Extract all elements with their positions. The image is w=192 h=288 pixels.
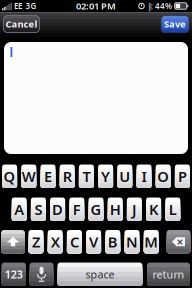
button[interactable]: C <box>67 230 82 253</box>
button[interactable]: M <box>144 230 159 253</box>
button[interactable]: O <box>156 164 171 188</box>
staticText: B <box>108 232 118 251</box>
staticText: I <box>141 166 146 186</box>
staticText: space <box>85 267 114 281</box>
staticText: EE <box>14 1 22 11</box>
button[interactable]: H <box>108 197 123 221</box>
button[interactable]: R <box>60 164 75 188</box>
staticText: R <box>63 166 72 186</box>
staticText: S <box>34 199 42 219</box>
button[interactable]: U <box>117 164 132 188</box>
button[interactable]: W <box>21 164 36 188</box>
button[interactable]: 123 <box>1 262 26 286</box>
button[interactable]: B <box>105 230 120 253</box>
staticText: 44% <box>155 1 172 11</box>
staticText: H <box>110 199 121 219</box>
staticText: A <box>14 199 24 219</box>
staticText: W <box>22 166 36 186</box>
staticText: return <box>152 267 184 281</box>
staticText: F <box>73 199 81 219</box>
staticText: P <box>178 166 187 186</box>
staticText: V <box>89 232 98 251</box>
staticText: × <box>177 234 184 250</box>
button[interactable]: T <box>79 164 94 188</box>
button[interactable]: I <box>136 164 151 188</box>
staticText: D <box>52 199 63 219</box>
staticText: 123 <box>5 267 23 281</box>
staticText: J <box>132 199 137 219</box>
staticText: T <box>82 166 90 186</box>
button[interactable]: space <box>57 262 142 286</box>
button[interactable]: L <box>165 197 180 221</box>
button[interactable]: Y <box>98 164 113 188</box>
button[interactable]: Q <box>2 164 17 188</box>
button[interactable]: N <box>124 230 139 253</box>
staticText: 3G <box>25 1 36 11</box>
button[interactable]: Z <box>28 230 43 253</box>
staticText: Save <box>164 18 186 30</box>
staticText: C <box>70 232 79 251</box>
button[interactable]: F <box>69 197 84 221</box>
staticText: N <box>126 232 138 251</box>
button[interactable]: V <box>86 230 101 253</box>
button[interactable]: Cancel <box>3 15 39 32</box>
staticText: L <box>169 199 177 219</box>
staticText: G <box>90 199 101 219</box>
staticText: 02:01 PM <box>76 0 116 12</box>
staticText: K <box>149 199 158 219</box>
button[interactable]: Dictate <box>29 262 53 286</box>
button[interactable]: G <box>88 197 103 221</box>
staticText: M <box>144 232 158 251</box>
button[interactable]: J <box>127 197 142 221</box>
button[interactable]: X <box>48 230 63 253</box>
button[interactable]: Shift <box>1 230 25 253</box>
button[interactable]: S <box>31 197 46 221</box>
button[interactable]: D <box>50 197 65 221</box>
staticText: Z <box>32 232 40 251</box>
staticText: Q <box>4 166 16 186</box>
button[interactable]: return <box>147 262 190 286</box>
button[interactable]: P <box>175 164 190 188</box>
button[interactable]: Delete <box>166 230 190 253</box>
staticText: Y <box>101 166 110 186</box>
staticText: E <box>44 166 52 186</box>
staticText: ᛒ <box>148 0 153 12</box>
button[interactable]: E <box>40 164 55 188</box>
staticText: Cancel <box>5 18 37 30</box>
button[interactable]: A <box>12 197 27 221</box>
staticText: U <box>119 166 130 186</box>
button[interactable]: Save <box>161 15 189 32</box>
staticText: O <box>157 166 169 186</box>
staticText: X <box>51 232 60 251</box>
button[interactable]: K <box>146 197 161 221</box>
